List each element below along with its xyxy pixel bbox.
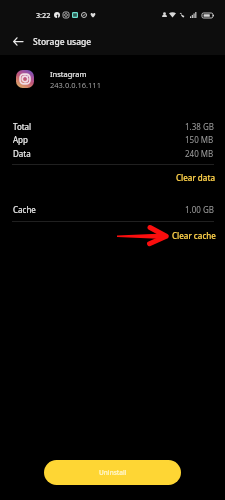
button[interactable]: Back: [6, 30, 29, 53]
staticText: 150 MB: [185, 134, 214, 145]
button[interactable]: Total: [0, 119, 225, 133]
staticText: App: [13, 134, 28, 145]
staticText: Storage usage: [33, 36, 92, 48]
button[interactable]: Cache: [0, 202, 225, 216]
button[interactable]: Instagram: [0, 62, 225, 96]
button[interactable]: App: [0, 132, 225, 146]
button[interactable]: Uninstall: [44, 460, 181, 485]
button[interactable]: Clear cache: [162, 224, 225, 246]
staticText: Total: [13, 121, 32, 132]
staticText: Clear data: [176, 172, 216, 182]
button[interactable]: Data: [0, 146, 225, 160]
staticText: Uninstall: [99, 468, 127, 477]
staticText: 240 MB: [185, 148, 214, 159]
button[interactable]: Clear data: [166, 166, 225, 188]
staticText: Instagram: [50, 69, 87, 79]
staticText: 1.38 GB: [185, 121, 214, 132]
staticText: Data: [13, 148, 31, 159]
staticText: 1.00 GB: [185, 204, 214, 215]
staticText: 3:22: [36, 10, 51, 20]
staticText: 243.0.0.16.111: [50, 80, 101, 90]
staticText: Cache: [13, 204, 36, 215]
staticText: Clear cache: [172, 230, 216, 240]
